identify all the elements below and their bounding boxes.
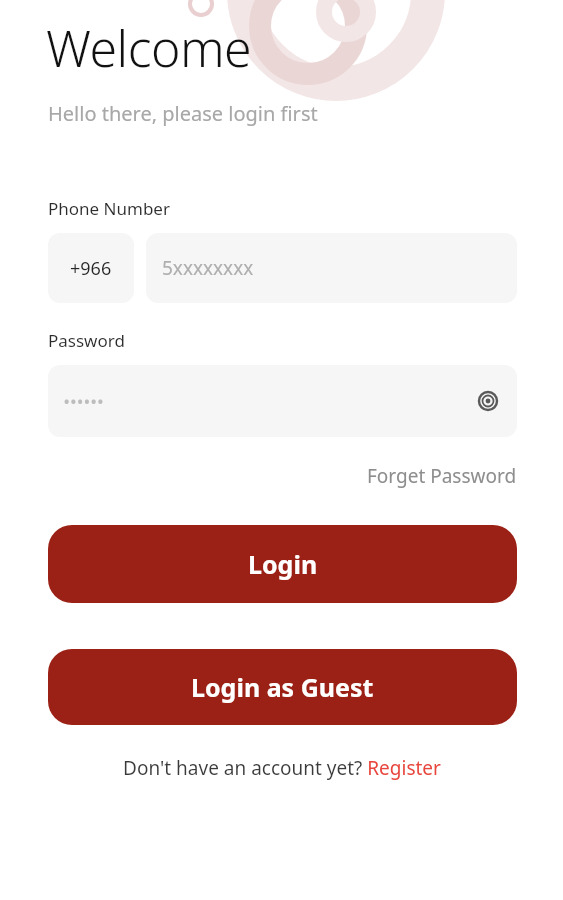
button[interactable]: Forget Password xyxy=(363,459,521,493)
staticText: +966 xyxy=(70,256,112,281)
staticText: Login as Guest xyxy=(191,670,374,704)
staticText: Welcome xyxy=(46,14,252,82)
staticText: Password xyxy=(48,329,125,352)
button[interactable]: Show password xyxy=(471,384,505,418)
staticText: Don't have an account yet? Register xyxy=(123,755,441,781)
button[interactable]: Don't have an account yet? Register xyxy=(123,755,441,781)
staticText: Login xyxy=(248,547,318,581)
button[interactable]: +966 xyxy=(48,233,134,303)
staticText: •••••• xyxy=(64,392,105,411)
button[interactable]: •••••• xyxy=(48,365,517,437)
staticText: Forget Password xyxy=(367,463,517,489)
button[interactable]: Login as Guest xyxy=(48,649,517,725)
button[interactable]: Login xyxy=(48,525,517,603)
staticText: Phone Number xyxy=(48,197,170,220)
button[interactable]: 5xxxxxxxx xyxy=(146,233,517,303)
staticText: Hello there, please login first xyxy=(48,100,318,127)
staticText: 5xxxxxxxx xyxy=(162,255,254,281)
